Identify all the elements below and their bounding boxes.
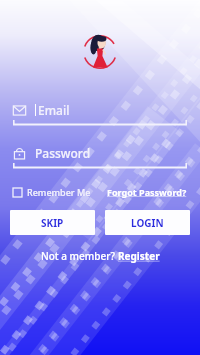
staticText: Register [118, 249, 160, 263]
staticText: Email [38, 102, 70, 118]
button[interactable]: Remember Me [13, 183, 91, 201]
staticText: Not a member? [41, 249, 118, 263]
staticText: SKIP [41, 216, 64, 230]
button[interactable]: SKIP [10, 210, 95, 235]
staticText: Password [35, 145, 91, 161]
button[interactable]: Register [118, 249, 160, 263]
staticText: Remember Me [27, 186, 91, 198]
button[interactable]: LOGIN [105, 210, 190, 235]
staticText: LOGIN [131, 216, 164, 230]
button[interactable]: Email [13, 98, 187, 127]
button[interactable]: Password [13, 141, 187, 170]
button[interactable]: Forgot Password? [107, 183, 187, 201]
staticText: Forgot Password? [107, 186, 187, 198]
